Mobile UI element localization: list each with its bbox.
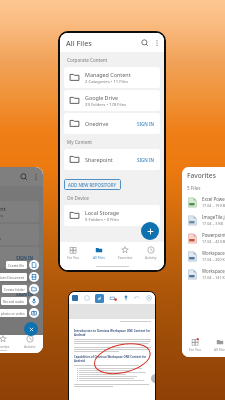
staticText: Excel Power...x [202, 196, 225, 202]
staticText: 29 Folders • 178 Files [85, 102, 127, 108]
staticText: SIGN IN [137, 157, 155, 163]
staticText: Activity [24, 344, 36, 348]
button[interactable]: Close [146, 295, 152, 301]
staticText: All Files [214, 347, 225, 352]
button[interactable]: Record audio [1, 296, 39, 306]
staticText: ImageTile.jpg [202, 214, 225, 220]
staticText: Managed Content [85, 71, 131, 78]
button[interactable]: Pin [123, 295, 129, 301]
button[interactable]: Search [138, 36, 151, 49]
staticText: Workspace_c... [202, 268, 225, 274]
button[interactable]: ADD NEW REPOSITORY [64, 179, 121, 190]
staticText: On Device [67, 195, 89, 201]
button[interactable]: Favorites [0, 335, 16, 348]
button[interactable]: For You [60, 242, 86, 263]
staticText: Favorites [187, 171, 216, 180]
button[interactable]: For You [182, 338, 207, 352]
button[interactable]: Powerpoint...nt [182, 229, 225, 247]
staticText: SIGN IN [16, 255, 34, 261]
button[interactable]: Comment [84, 295, 90, 301]
staticText: Managed Content [0, 205, 6, 212]
staticText: 2 Categories • 11 Files [0, 213, 3, 219]
staticText: 2 Categories • 11 Files [85, 79, 128, 85]
staticText: Favorites [118, 255, 133, 260]
staticText: Scan Document [0, 275, 25, 280]
button[interactable]: Excel Power...x [182, 193, 225, 211]
button[interactable]: Save [72, 295, 78, 301]
staticText: For You [67, 255, 79, 260]
button[interactable]: Take photo or video [0, 308, 39, 318]
button[interactable]: Add [141, 222, 159, 240]
staticText: ADD NEW REPOSITORY [68, 182, 117, 188]
staticText: Workspace On... [202, 250, 225, 256]
button[interactable]: Create folder [2, 284, 39, 294]
button[interactable]: Scroll handle [151, 374, 155, 383]
button[interactable]: Google Drive [64, 90, 160, 111]
staticText: All Files [66, 38, 92, 48]
button[interactable]: Activity [138, 242, 164, 263]
staticText: Local Storage [85, 209, 120, 216]
button[interactable]: Local Storage [64, 205, 160, 226]
staticText: 17.04 – 19 KB [202, 203, 225, 208]
button[interactable]: All Files [207, 338, 225, 352]
button[interactable]: Sharepoint [0, 283, 39, 304]
staticText: 5 Files [187, 185, 201, 191]
staticText: Favorites [0, 344, 10, 348]
button[interactable]: ImageTile.jpg [182, 211, 225, 229]
staticText: Create folder [4, 287, 25, 292]
button[interactable]: Workspace On... [182, 247, 225, 265]
staticText: Take photo or video [0, 311, 25, 316]
staticText: Onedrive [85, 120, 109, 127]
staticText: Sharepoint [85, 156, 113, 163]
staticText: Activity [145, 255, 157, 260]
staticText: 17.04 – 141 KB [202, 275, 225, 280]
button[interactable]: Managed Content [64, 67, 160, 88]
staticText: 17.04 – 42 KB [202, 239, 225, 244]
button[interactable]: Favorites [112, 242, 138, 263]
staticText: For You [189, 347, 201, 352]
staticText: 17.04 – 200 KB [202, 257, 225, 262]
button[interactable]: More options [151, 37, 162, 48]
button[interactable]: Scan Document [0, 272, 39, 282]
button[interactable]: All Files [86, 242, 112, 263]
staticText: 17.04 – 3 KB [202, 221, 223, 226]
staticText: My Content [67, 139, 92, 145]
staticText: Corporate Content [67, 57, 108, 63]
staticText: 0 Folders • 0 Files [85, 217, 119, 223]
button[interactable]: Managed Content [0, 201, 39, 222]
staticText: Create file [8, 263, 25, 268]
button[interactable]: Create file [6, 260, 39, 270]
button[interactable]: Onedrive [0, 247, 39, 268]
staticText: Powerpoint...nt [202, 232, 225, 238]
staticText: SIGN IN [16, 291, 34, 297]
staticText: SIGN IN [137, 121, 155, 127]
button[interactable]: Workspace_c... [182, 265, 225, 283]
staticText: Introduction to Omnissa Workspace ONE Co… [74, 329, 151, 337]
staticText: Google Drive [85, 94, 118, 101]
button[interactable]: Draw [95, 294, 104, 303]
staticText: Record audio [3, 299, 25, 304]
button[interactable]: Activity [16, 335, 43, 348]
button[interactable]: Sharepoint [64, 149, 160, 170]
staticText: All Files [93, 255, 105, 260]
button[interactable]: Close menu [24, 322, 38, 336]
staticText: Capabilities of Omnissa Workspace ONE Co… [74, 355, 151, 363]
button[interactable]: Highlight [110, 295, 117, 302]
button[interactable]: Onedrive [64, 113, 160, 134]
button[interactable]: Undo [134, 295, 140, 301]
staticText: 29 Folders • 178 Files [0, 236, 2, 242]
